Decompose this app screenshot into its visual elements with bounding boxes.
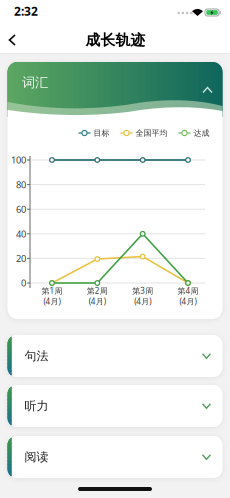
- button[interactable]: 句法: [7, 335, 222, 377]
- button[interactable]: 阅读: [7, 436, 222, 478]
- staticText: (4月): [43, 296, 60, 307]
- staticText: 句法: [24, 349, 48, 363]
- staticText: 80: [16, 178, 26, 191]
- staticText: 全国平均: [135, 128, 167, 138]
- staticText: 达成: [193, 128, 209, 138]
- staticText: 60: [16, 203, 26, 215]
- staticText: 2:32: [14, 3, 38, 19]
- staticText: 第4周: [177, 285, 198, 296]
- staticText: (4月): [179, 296, 196, 307]
- staticText: 20: [16, 252, 26, 265]
- staticText: 40: [16, 228, 26, 240]
- button[interactable]: [3, 29, 23, 51]
- staticText: 第1周: [41, 285, 62, 296]
- staticText: 第2周: [87, 285, 108, 296]
- staticText: 听力: [24, 399, 48, 413]
- button[interactable]: 词汇: [7, 62, 222, 319]
- staticText: 目标: [93, 128, 109, 138]
- staticText: 成长轨迹: [85, 31, 145, 49]
- staticText: 阅读: [24, 450, 48, 464]
- staticText: 第3周: [132, 285, 153, 296]
- button[interactable]: 听力: [7, 385, 222, 427]
- staticText: 0: [21, 277, 26, 289]
- staticText: 词汇: [22, 74, 48, 91]
- staticText: (4月): [89, 296, 106, 307]
- staticText: 100: [11, 154, 26, 166]
- staticText: (4月): [134, 296, 151, 307]
